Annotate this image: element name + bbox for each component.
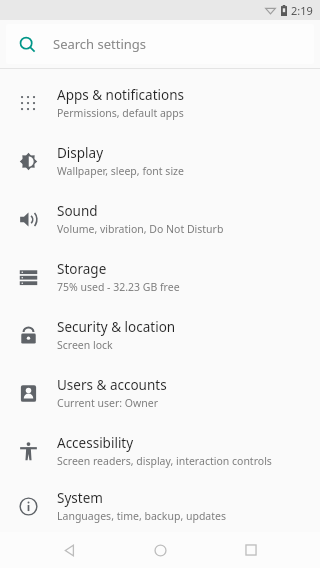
staticText: Screen lock	[57, 338, 113, 352]
button[interactable]: System	[0, 480, 320, 532]
staticText: Screen readers, display, interaction con…	[57, 454, 272, 468]
button[interactable]: Sound	[0, 190, 320, 248]
staticText: Accessibility	[57, 434, 134, 452]
button[interactable]: Storage	[0, 248, 320, 306]
staticText: System	[57, 489, 103, 507]
staticText: Permissions, default apps	[57, 106, 184, 120]
staticText: Security & location	[57, 318, 176, 336]
button[interactable]: Users & accounts	[0, 364, 320, 422]
button[interactable]: Search settings	[6, 24, 314, 64]
button[interactable]: Back	[47, 532, 91, 568]
button[interactable]: Home	[138, 532, 182, 568]
button[interactable]: Apps & notifications	[0, 74, 320, 132]
staticText: Users & accounts	[57, 376, 167, 394]
button[interactable]: Recent apps	[229, 532, 273, 568]
button[interactable]: Display	[0, 132, 320, 190]
staticText: 2:19	[291, 3, 313, 18]
staticText: Apps & notifications	[57, 86, 184, 104]
staticText: Current user: Owner	[57, 396, 159, 410]
staticText: Sound	[57, 202, 98, 220]
staticText: Display	[57, 144, 104, 162]
staticText: Storage	[57, 260, 107, 278]
button[interactable]: Security & location	[0, 306, 320, 364]
staticText: 75% used - 32.23 GB free	[57, 280, 180, 294]
staticText: Volume, vibration, Do Not Disturb	[57, 222, 224, 236]
staticText: Languages, time, backup, updates	[57, 509, 226, 523]
button[interactable]: Accessibility	[0, 422, 320, 480]
staticText: Wallpaper, sleep, font size	[57, 164, 184, 178]
staticText: Search settings	[53, 35, 147, 53]
